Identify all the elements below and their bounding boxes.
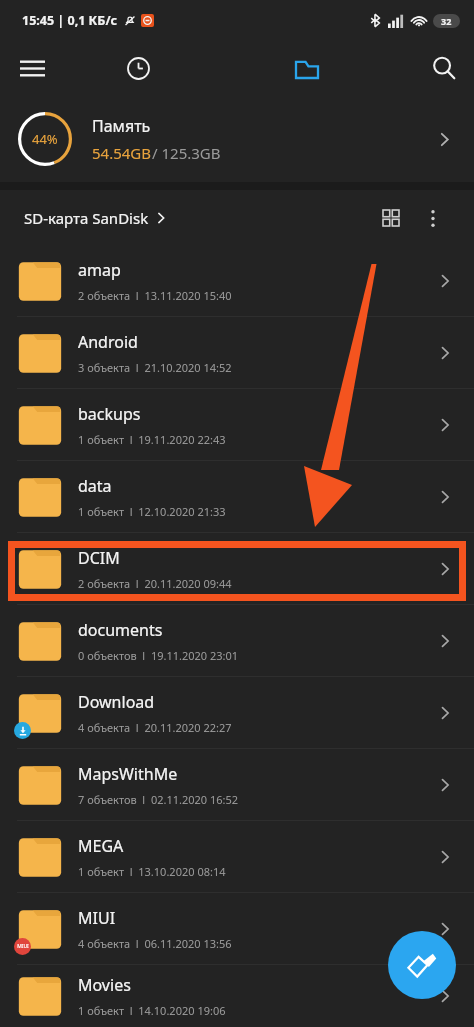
button[interactable]: Menu [8,44,56,92]
staticText: MIUI [17,943,29,950]
staticText: 2 объекта l 13.11.2020 15:40 [78,288,232,303]
staticText: 0 объектов l 19.11.2020 23:01 [78,648,239,663]
button[interactable]: documents [0,605,474,676]
button[interactable]: Clean up [388,931,456,999]
staticText: documents [78,619,163,641]
button[interactable]: Movies [0,965,474,1027]
button[interactable]: Download [0,677,474,748]
button[interactable]: amap [0,245,474,316]
staticText: data [78,475,112,497]
staticText: 44% [32,130,58,148]
staticText: MapsWithMe [78,763,178,785]
button[interactable]: MEGA [0,821,474,892]
staticText: Память [92,115,151,137]
button[interactable]: MIUI [0,893,474,964]
staticText: 1 объект l 19.11.2020 22:43 [78,432,226,447]
staticText: 4 объекта l 06.11.2020 13:56 [78,936,232,951]
staticText: Download [78,691,155,713]
staticText: MIUI [78,907,116,929]
staticText: 54.54GB [92,143,152,163]
staticText: 7 объектов l 02.11.2020 16:52 [78,792,239,807]
button[interactable]: MapsWithMe [0,749,474,820]
button[interactable]: Grid view [371,198,411,238]
staticText: 2 объекта l 20.11.2020 09:44 [78,576,232,591]
button[interactable]: More options [413,198,453,238]
staticText: MEGA [78,835,124,857]
staticText: 1 объект l 13.10.2020 08:14 [78,864,226,879]
staticText: 1 объект l 14.10.2020 19:06 [78,1003,226,1018]
button[interactable]: Files [283,44,331,92]
staticText: 3 объекта l 21.10.2020 14:52 [78,360,232,375]
staticText: 1 объект l 12.10.2020 21:33 [78,504,226,519]
staticText: 32 [441,15,452,27]
staticText: 4 объекта l 20.11.2020 22:27 [78,720,232,735]
staticText: backups [78,403,141,425]
staticText: / 125.3GB [152,143,221,163]
button[interactable]: Recent [114,44,162,92]
staticText: SD-карта SanDisk [24,208,149,228]
staticText: Android [78,331,138,353]
button[interactable]: data [0,461,474,532]
staticText: amap [78,259,121,281]
button[interactable]: Search [420,44,468,92]
button[interactable]: DCIM [0,533,474,604]
button[interactable]: 44% [0,96,474,182]
staticText: 15:45 | 0,1 КБ/с [22,12,118,29]
staticText: DCIM [78,547,120,569]
button[interactable]: backups [0,389,474,460]
staticText: Movies [78,974,131,996]
button[interactable]: Android [0,317,474,388]
button[interactable]: SD-карта SanDisk [24,208,167,228]
